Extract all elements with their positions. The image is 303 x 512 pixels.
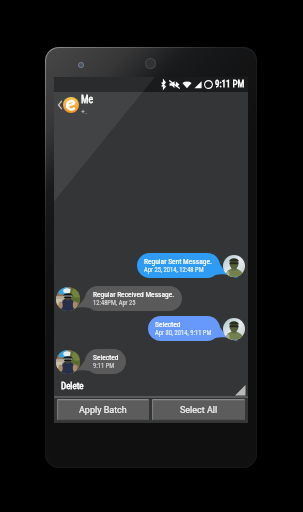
staticText: Selected — [155, 320, 181, 329]
staticText: 9:11 PM — [215, 79, 245, 90]
staticText: +. — [81, 107, 88, 116]
staticText: Me — [81, 94, 94, 106]
staticText: Regular Sent Message. — [144, 257, 212, 266]
staticText: Delete — [61, 381, 84, 392]
staticText: 12:48PM, Apr 25 — [93, 299, 136, 307]
staticText: Selected — [93, 353, 119, 362]
button[interactable]: Select All — [152, 399, 245, 421]
staticText: Select All — [180, 405, 218, 416]
staticText: Regular Received Message. — [93, 290, 175, 299]
button[interactable]: Selected — [54, 316, 248, 341]
button[interactable]: Delete — [54, 377, 248, 398]
staticText: 9:11 PM — [93, 362, 115, 370]
button[interactable]: Regular Sent Message. — [54, 253, 248, 278]
staticText: Apply Batch — [79, 405, 127, 416]
button[interactable]: Apply Batch — [57, 399, 149, 421]
staticText: Apr 30, 2014, 9:11 PM — [155, 329, 212, 337]
button[interactable]: Back — [54, 92, 248, 118]
button[interactable]: Selected — [54, 349, 248, 374]
button[interactable]: Regular Received Message. — [54, 286, 248, 311]
other: Back — [58, 100, 62, 110]
staticText: Apr 25, 2014, 12:48 PM — [144, 266, 204, 274]
